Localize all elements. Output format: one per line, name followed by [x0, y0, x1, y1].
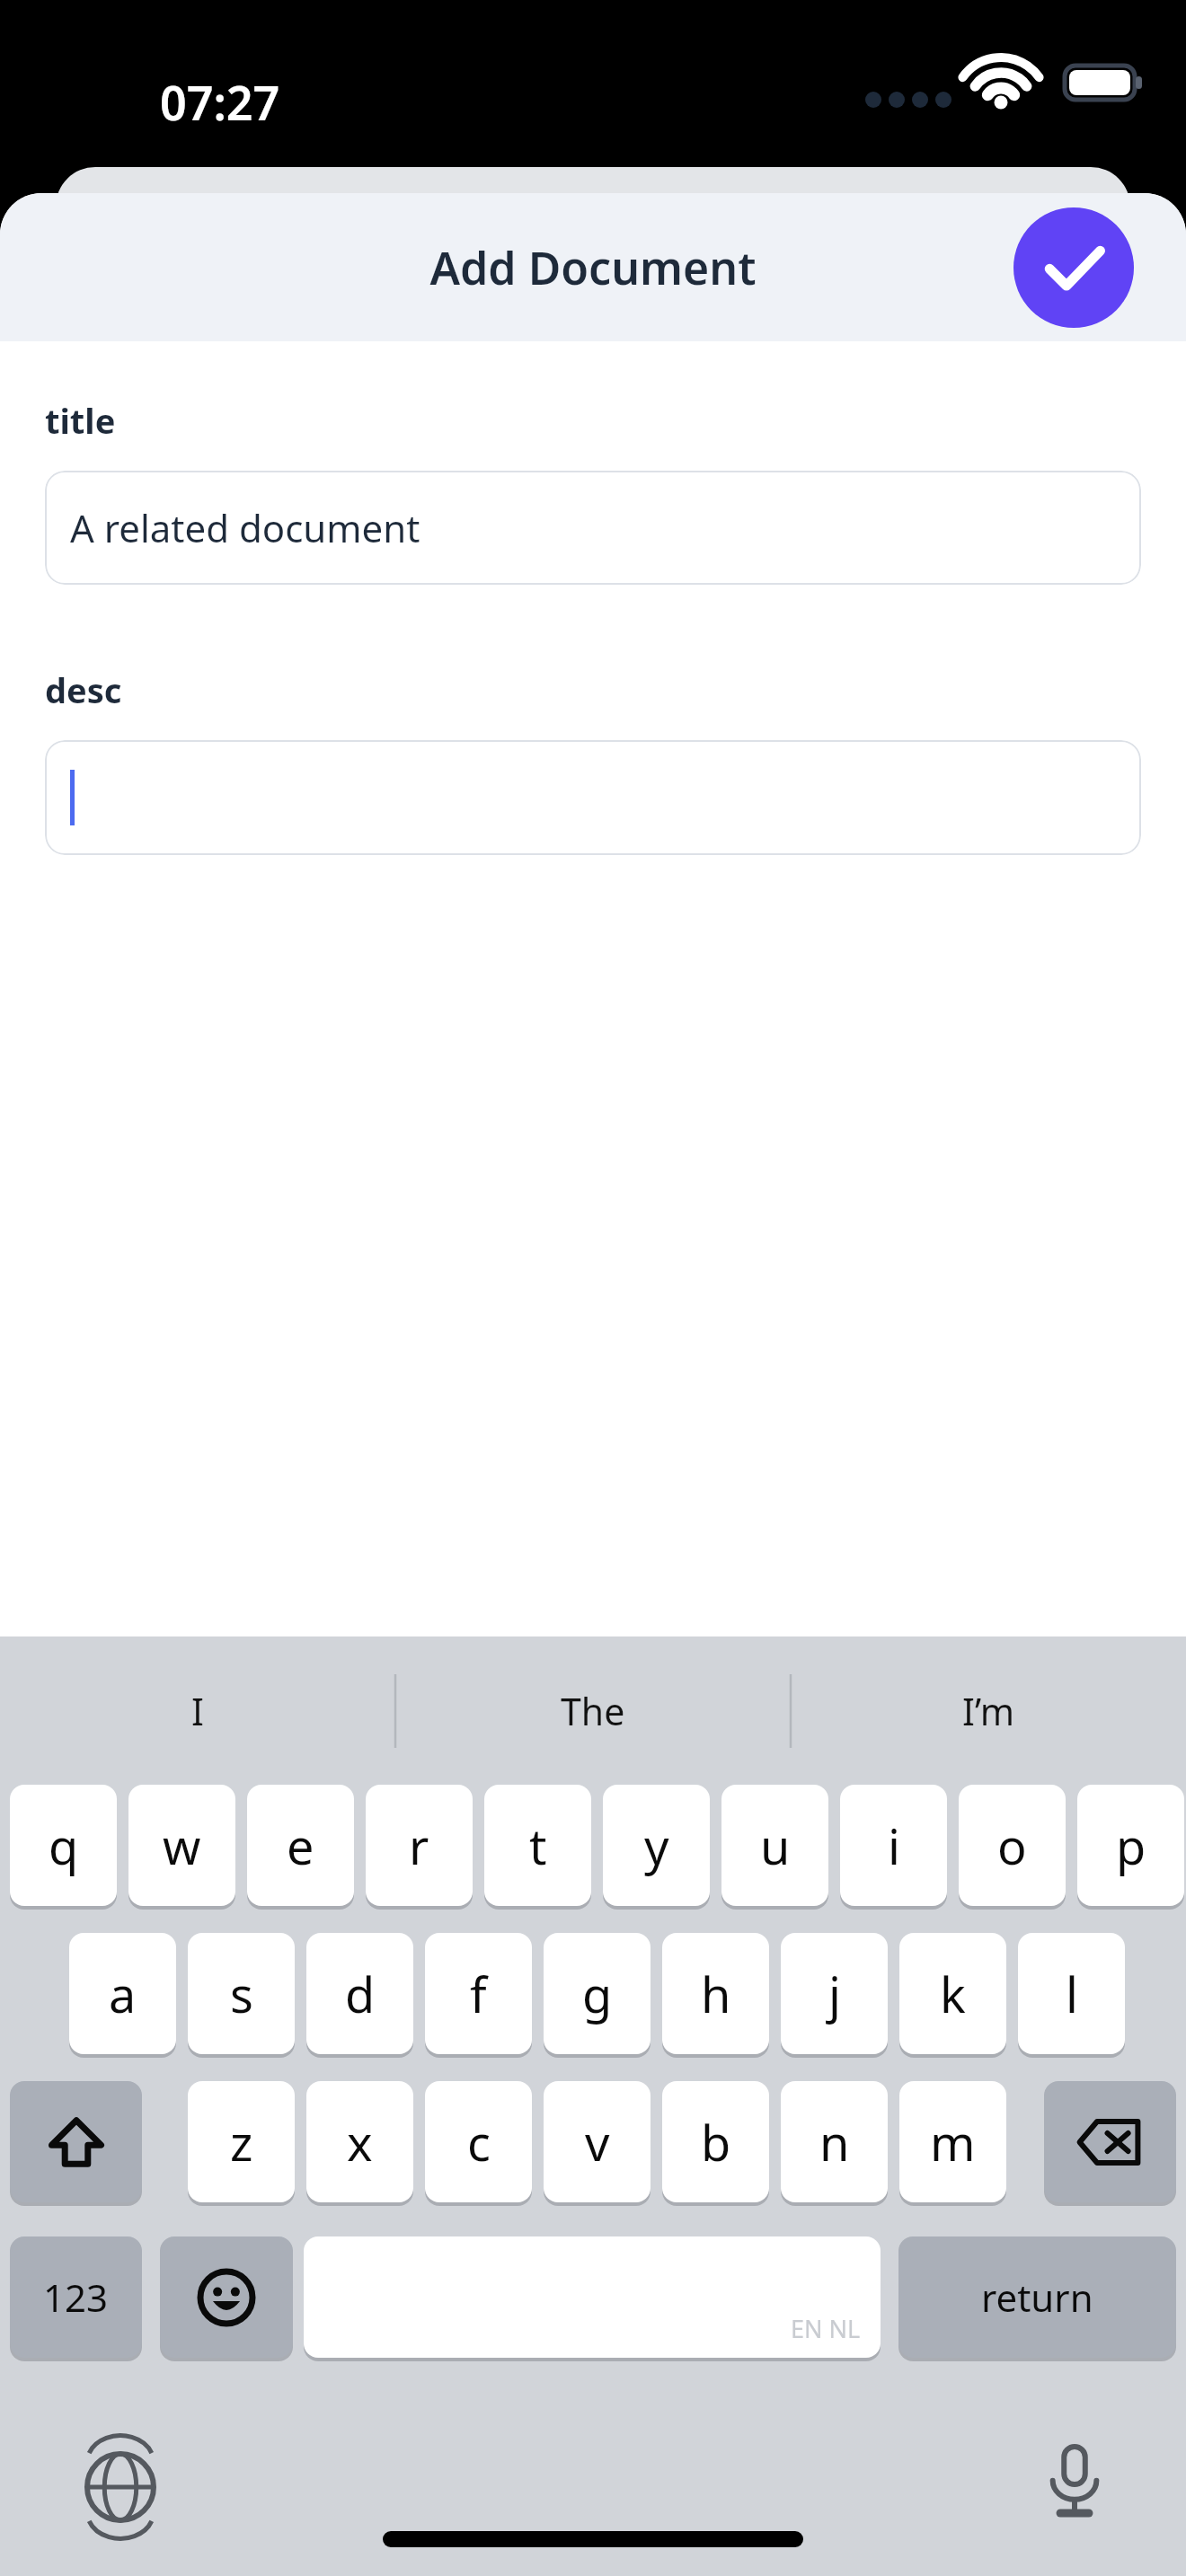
staticText: 07:27 [160, 70, 280, 134]
button[interactable]: v [544, 2081, 651, 2202]
button[interactable]: b [662, 2081, 769, 2202]
button[interactable]: i [840, 1785, 947, 1906]
button[interactable]: return [898, 2236, 1176, 2358]
staticText: p [1116, 1813, 1146, 1879]
button[interactable] [45, 740, 1141, 855]
staticText: return [981, 2272, 1093, 2323]
staticText: w [163, 1813, 201, 1879]
button[interactable]: 123 [10, 2236, 142, 2358]
button[interactable]: s [188, 1933, 295, 2054]
button[interactable]: f [425, 1933, 532, 2054]
staticText: I’m [962, 1686, 1015, 1736]
staticText: j [828, 1961, 841, 2027]
button[interactable]: m [899, 2081, 1006, 2202]
staticText: title [45, 397, 116, 444]
button[interactable]: Backspace [1044, 2081, 1176, 2202]
button[interactable]: Shift [10, 2081, 142, 2202]
staticText: 123 [43, 2272, 109, 2323]
button[interactable]: g [544, 1933, 651, 2054]
button[interactable]: Space [304, 2236, 881, 2358]
staticText: h [701, 1961, 731, 2027]
button[interactable]: n [781, 2081, 888, 2202]
staticText: Add Document [429, 237, 757, 298]
staticText: z [230, 2109, 253, 2175]
button[interactable]: x [306, 2081, 413, 2202]
staticText: A related document [70, 502, 420, 553]
button[interactable]: y [603, 1785, 710, 1906]
staticText: q [49, 1813, 79, 1879]
staticText: m [930, 2109, 976, 2175]
button[interactable]: h [662, 1933, 769, 2054]
button[interactable]: Dictate [1037, 2442, 1112, 2518]
staticText: s [230, 1961, 253, 2027]
staticText: f [470, 1961, 487, 2027]
button[interactable]: t [484, 1785, 591, 1906]
staticText: d [345, 1961, 376, 2027]
button[interactable]: A related document [45, 471, 1141, 585]
button[interactable]: o [959, 1785, 1066, 1906]
button[interactable]: I [0, 1636, 395, 1785]
button[interactable]: z [188, 2081, 295, 2202]
staticText: i [888, 1813, 900, 1879]
button[interactable]: j [781, 1933, 888, 2054]
button[interactable]: Change keyboard language [83, 2449, 158, 2525]
staticText: o [997, 1813, 1027, 1879]
button[interactable]: q [10, 1785, 117, 1906]
button[interactable]: w [128, 1785, 235, 1906]
staticText: v [585, 2109, 610, 2175]
button[interactable]: Emoji [160, 2236, 293, 2358]
staticText: desc [45, 666, 122, 713]
button[interactable]: d [306, 1933, 413, 2054]
staticText: y [644, 1813, 669, 1879]
staticText: x [347, 2109, 373, 2175]
button[interactable]: k [899, 1933, 1006, 2054]
staticText: g [582, 1961, 613, 2027]
button[interactable]: Save document [1013, 207, 1134, 328]
button[interactable]: l [1018, 1933, 1125, 2054]
button[interactable]: u [721, 1785, 828, 1906]
staticText: k [940, 1961, 966, 2027]
staticText: The [561, 1686, 625, 1736]
staticText: EN NL [791, 2312, 861, 2345]
staticText: r [409, 1813, 429, 1879]
button[interactable]: c [425, 2081, 532, 2202]
button[interactable]: I’m [791, 1636, 1186, 1785]
button[interactable]: r [366, 1785, 473, 1906]
button[interactable]: p [1077, 1785, 1184, 1906]
staticText: b [701, 2109, 731, 2175]
staticText: l [1066, 1961, 1078, 2027]
staticText: a [109, 1961, 137, 2027]
staticText: n [819, 2109, 850, 2175]
button[interactable]: e [247, 1785, 354, 1906]
button[interactable]: The [395, 1636, 791, 1785]
staticText: e [287, 1813, 314, 1879]
button[interactable]: a [69, 1933, 176, 2054]
staticText: u [760, 1813, 791, 1879]
staticText: c [467, 2109, 491, 2175]
staticText: I [191, 1686, 204, 1736]
staticText: t [529, 1813, 547, 1879]
